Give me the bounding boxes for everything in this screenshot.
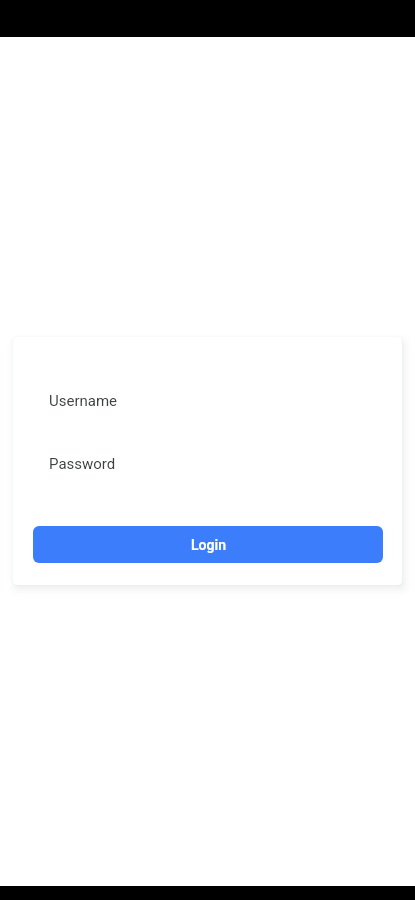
button[interactable]: Username (33, 378, 383, 420)
button[interactable]: Login (33, 526, 383, 563)
staticText: Password (49, 455, 116, 473)
button[interactable]: Password (33, 441, 383, 483)
staticText: Username (49, 392, 118, 410)
staticText: Login (191, 537, 226, 553)
